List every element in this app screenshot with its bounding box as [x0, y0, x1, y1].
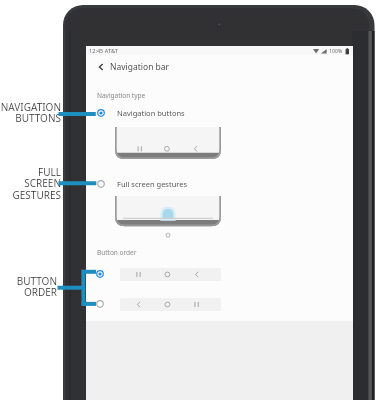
button[interactable]: Navigation buttons — [86, 104, 352, 122]
staticText: FULL SCREEN GESTURES — [0, 165, 61, 202]
staticText: BUTTON ORDER — [0, 274, 57, 299]
staticText: 12:45 AT&T — [89, 47, 118, 55]
staticText: 100% — [329, 47, 343, 54]
button[interactable] — [86, 264, 352, 284]
button[interactable]: Full screen gestures — [86, 175, 352, 193]
other: Back — [97, 63, 105, 71]
staticText: Button order — [97, 248, 137, 257]
button[interactable] — [86, 294, 352, 314]
button[interactable]: Back — [86, 55, 352, 79]
staticText: NAVIGATION BUTTONS — [0, 100, 61, 125]
staticText: Navigation buttons — [117, 108, 185, 118]
staticText: Full screen gestures — [117, 179, 188, 189]
staticText: Navigation type — [97, 91, 146, 100]
staticText: Navigation bar — [110, 61, 170, 73]
